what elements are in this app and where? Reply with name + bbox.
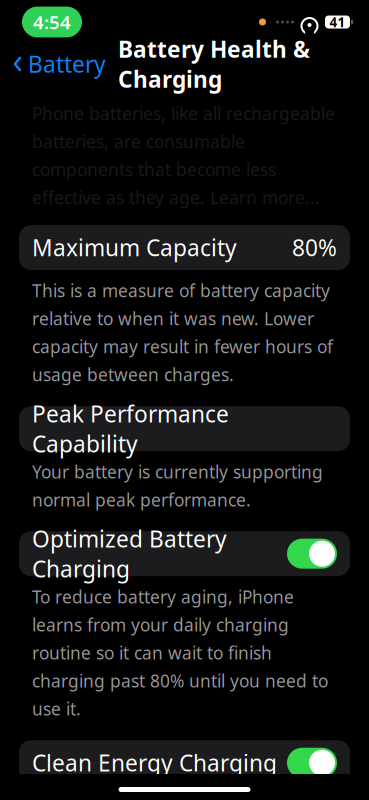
button[interactable]: Clean Energy Charging	[0, 740, 369, 785]
staticText: Optimized Battery Charging	[32, 524, 227, 584]
staticText: This is a measure of battery capacity re…	[32, 279, 333, 386]
staticText: To reduce battery aging, iPhone learns f…	[32, 585, 328, 720]
staticText: Clean Energy Charging	[32, 748, 277, 778]
staticText: Battery Health & Charging	[118, 34, 310, 94]
staticText: Your battery is currently supporting nor…	[32, 460, 323, 511]
staticText: 41	[329, 13, 345, 31]
button[interactable]: Battery	[0, 43, 106, 85]
staticText: Maximum Capacity	[32, 232, 237, 263]
staticText: Battery	[28, 49, 106, 79]
staticText: 80%	[292, 232, 337, 263]
staticText: Phone batteries, like all rechargeable b…	[32, 102, 335, 209]
staticText: 4:54	[33, 10, 71, 34]
button[interactable]: Peak Performance Capability	[0, 406, 369, 451]
staticText: Peak Performance Capability	[32, 398, 229, 459]
button[interactable]: Optimized Battery Charging	[0, 531, 369, 576]
